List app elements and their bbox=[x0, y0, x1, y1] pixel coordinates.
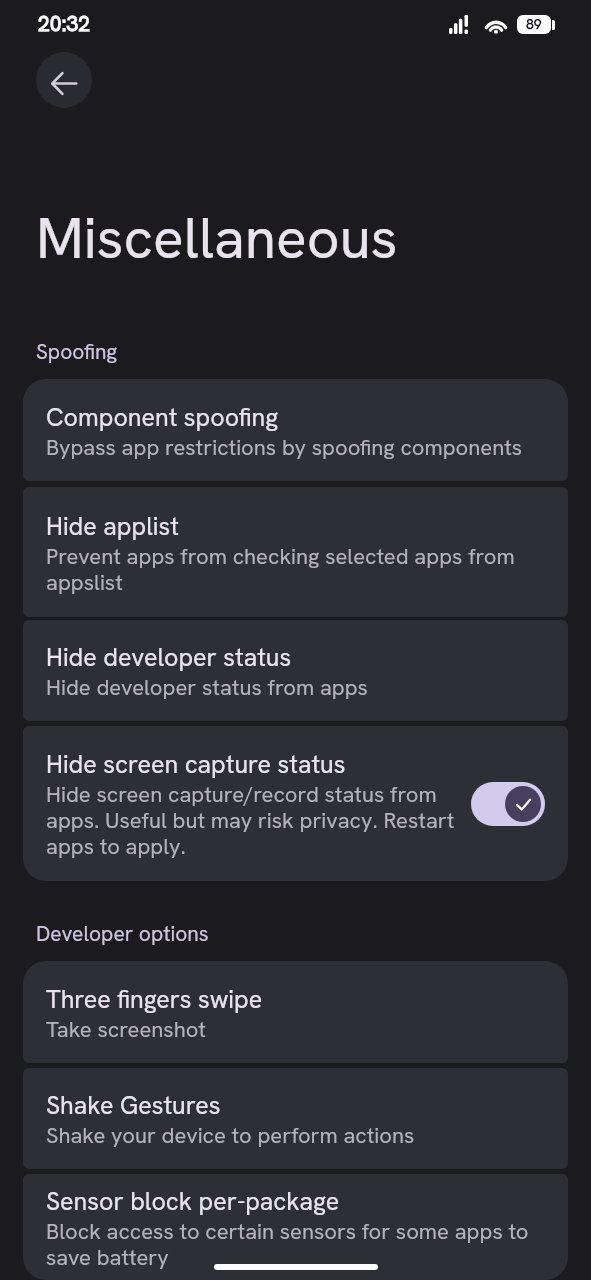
staticText: Take screenshot bbox=[46, 1015, 206, 1044]
button[interactable]: Hide applist bbox=[23, 487, 568, 617]
staticText: apps to apply. bbox=[46, 832, 186, 861]
button[interactable]: Component spoofing bbox=[23, 379, 568, 481]
staticText: Shake your device to perform actions bbox=[46, 1121, 415, 1150]
staticText: Sensor block per-package bbox=[46, 1185, 340, 1218]
staticText: apps. Useful but may risk privacy. Resta… bbox=[46, 806, 455, 835]
staticText: Hide screen capture status bbox=[46, 748, 346, 781]
button[interactable]: Back bbox=[36, 52, 92, 108]
button[interactable]: Sensor block per-package bbox=[23, 1174, 568, 1280]
button[interactable]: Toggle bbox=[471, 782, 545, 826]
staticText: appslist bbox=[46, 568, 123, 597]
staticText: save battery bbox=[46, 1243, 169, 1272]
staticText: Component spoofing bbox=[46, 401, 279, 434]
staticText: Shake Gestures bbox=[46, 1089, 221, 1122]
button[interactable]: Three fingers swipe bbox=[23, 961, 568, 1063]
staticText: Hide developer status bbox=[46, 641, 292, 674]
staticText: Spoofing bbox=[36, 338, 118, 365]
button[interactable]: Shake Gestures bbox=[23, 1068, 568, 1169]
staticText: Developer options bbox=[36, 920, 209, 947]
button[interactable]: Hide developer status bbox=[23, 620, 568, 721]
staticText: Prevent apps from checking selected apps… bbox=[46, 542, 515, 571]
staticText: Hide applist bbox=[46, 510, 179, 543]
staticText: Hide screen capture/record status from bbox=[46, 780, 437, 809]
staticText: Three fingers swipe bbox=[46, 983, 263, 1016]
button[interactable]: Hide screen capture status bbox=[23, 726, 568, 881]
staticText: Block access to certain sensors for some… bbox=[46, 1217, 529, 1246]
staticText: Bypass app restrictions by spoofing comp… bbox=[46, 433, 523, 462]
staticText: 20:32 bbox=[38, 10, 91, 37]
staticText: Miscellaneous bbox=[36, 201, 398, 275]
staticText: Hide developer status from apps bbox=[46, 673, 368, 702]
staticText: 89 bbox=[526, 15, 542, 33]
